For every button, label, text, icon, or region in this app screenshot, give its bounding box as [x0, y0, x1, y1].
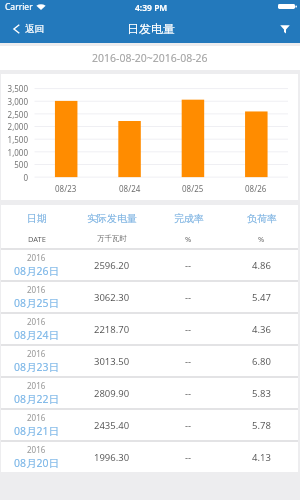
staticText: -- [185, 323, 192, 336]
button[interactable]: 2016 [1, 410, 298, 440]
button[interactable]: 2016 [1, 314, 298, 344]
staticText: 2,500 [1, 109, 28, 120]
staticText: 1,000 [1, 147, 28, 158]
staticText: 日期 [27, 212, 47, 225]
staticText: 08月24日 [14, 328, 60, 342]
staticText: 5.78 [252, 419, 271, 432]
staticText: 4.13 [252, 451, 271, 464]
staticText: 0 [1, 172, 28, 183]
staticText: 2016-08-20~2016-08-26 [92, 51, 208, 65]
staticText: 2016 [27, 444, 46, 455]
staticText: 4:39 PM [135, 2, 168, 14]
staticText: 日发电量 [127, 21, 175, 36]
staticText: -- [185, 419, 192, 432]
staticText: 完成率 [174, 212, 204, 225]
staticText: 2016 [27, 252, 46, 263]
button[interactable]: 返回 [0, 16, 56, 43]
staticText: 2809.90 [94, 387, 130, 400]
staticText: % [258, 234, 265, 244]
staticText: 负荷率 [247, 212, 277, 225]
staticText: 08月21日 [14, 424, 60, 438]
staticText: 500 [1, 159, 28, 170]
staticText: -- [185, 451, 192, 464]
staticText: -- [185, 355, 192, 368]
staticText: 08月22日 [14, 392, 60, 406]
staticText: 4.36 [252, 323, 271, 336]
staticText: 3013.50 [94, 355, 130, 368]
staticText: 08/23 [55, 183, 77, 194]
staticText: 3,500 [1, 83, 28, 94]
staticText: 08/26 [245, 183, 267, 194]
staticText: -- [185, 259, 192, 272]
staticText: -- [185, 291, 192, 304]
staticText: 万千瓦时 [97, 234, 127, 243]
staticText: 6.80 [252, 355, 271, 368]
staticText: 2435.40 [94, 419, 130, 432]
staticText: 3062.30 [94, 291, 130, 304]
staticText: 08月26日 [14, 264, 60, 278]
button[interactable]: 2016-08-20~2016-08-26 [0, 46, 300, 70]
staticText: 2596.20 [94, 259, 130, 272]
staticText: 1,500 [1, 134, 28, 145]
staticText: 2016 [27, 380, 46, 391]
button[interactable]: Filter [270, 16, 300, 43]
staticText: 5.47 [252, 291, 271, 304]
staticText: 08月25日 [14, 296, 60, 310]
button[interactable]: 2016 [1, 250, 298, 280]
staticText: 返回 [25, 23, 44, 35]
button[interactable]: 2016 [1, 442, 298, 472]
button[interactable]: 2016 [1, 378, 298, 408]
staticText: 2016 [27, 348, 46, 359]
staticText: 1996.30 [94, 451, 130, 464]
staticText: 08月23日 [14, 360, 60, 374]
staticText: 实际发电量 [87, 212, 137, 225]
button[interactable]: 2016 [1, 282, 298, 312]
staticText: 2218.70 [94, 323, 130, 336]
staticText: 2,000 [1, 121, 28, 132]
staticText: % [185, 234, 192, 244]
staticText: 2016 [27, 316, 46, 327]
button[interactable]: 2016 [1, 346, 298, 376]
staticText: 2016 [27, 284, 46, 295]
staticText: 5.83 [252, 387, 271, 400]
staticText: 08/25 [182, 183, 204, 194]
staticText: DATE [28, 234, 46, 244]
staticText: Carrier [5, 1, 33, 13]
staticText: 08/24 [119, 183, 141, 194]
staticText: -- [185, 387, 192, 400]
staticText: 3,000 [1, 96, 28, 107]
staticText: 2016 [27, 412, 46, 423]
staticText: 4.86 [252, 259, 271, 272]
staticText: 08月20日 [14, 456, 60, 470]
